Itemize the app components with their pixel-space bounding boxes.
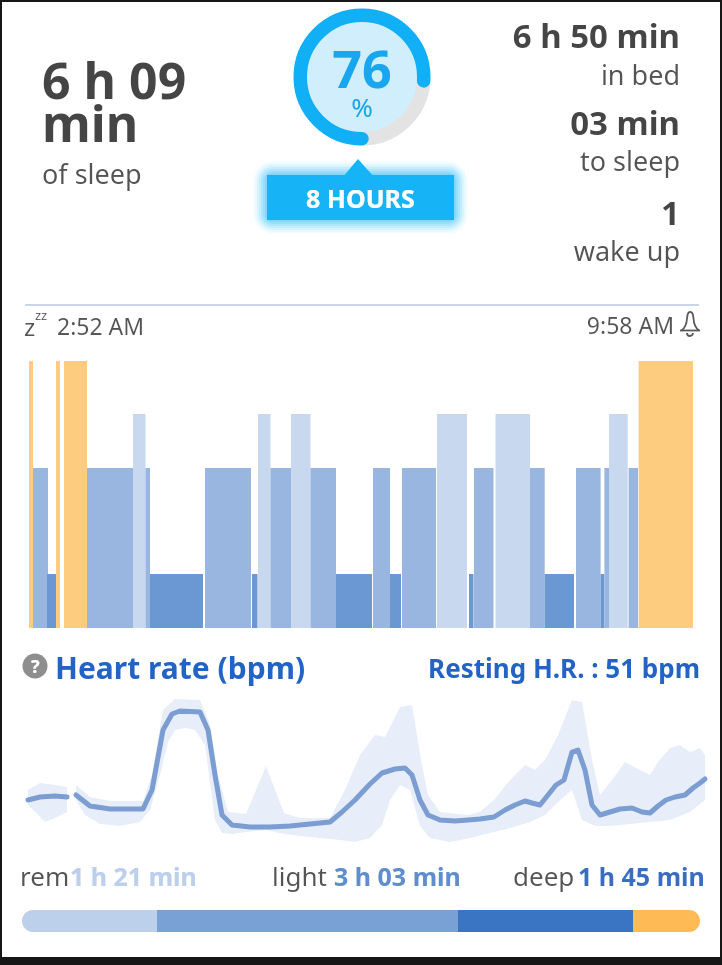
staticText: 1 h 45 min [578, 859, 705, 893]
staticText: 6 h 09 [42, 46, 187, 114]
staticText: Resting H.R. : 51 bpm [428, 650, 700, 685]
staticText: 6 h 50 min [512, 13, 680, 58]
staticText: Heart rate (bpm) [55, 647, 306, 688]
staticText: wake up [573, 232, 680, 269]
staticText: light [272, 858, 327, 893]
staticText: to sleep [579, 142, 680, 179]
staticText: 8 HOURS [306, 181, 415, 215]
button[interactable]: z [24, 306, 184, 336]
staticText: deep [513, 858, 575, 893]
staticText: 76 [332, 32, 392, 103]
staticText: 03 min [570, 100, 680, 145]
staticText: 9:58 AM [586, 309, 674, 340]
staticText: in bed [600, 56, 680, 93]
staticText: 1 h 21 min [70, 859, 197, 893]
staticText: rem [20, 858, 70, 893]
staticText: % [351, 89, 373, 124]
button[interactable]: 8 HOURS [267, 175, 454, 220]
button[interactable]: ? [23, 654, 48, 679]
staticText: 2:52 AM [57, 310, 145, 340]
button[interactable] [560, 306, 705, 336]
staticText: ? [31, 654, 40, 679]
staticText: z [24, 310, 36, 340]
staticText: 3 h 03 min [334, 859, 461, 893]
staticText: 1 [661, 190, 680, 235]
staticText: zz [35, 306, 48, 324]
staticText: min [42, 89, 139, 157]
staticText: of sleep [42, 155, 142, 192]
